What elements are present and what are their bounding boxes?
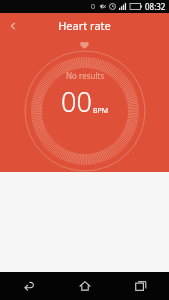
button[interactable]: Back [0, 13, 26, 38]
button[interactable]: Back [0, 272, 57, 300]
staticText: No results [66, 70, 105, 81]
staticText: 00 [61, 83, 92, 120]
staticText: 08:32 [145, 1, 166, 12]
button[interactable]: Recent apps [113, 272, 169, 300]
button[interactable]: Home [57, 272, 113, 300]
staticText: 0 [91, 2, 96, 12]
staticText: BPM [93, 106, 109, 116]
staticText: Heart rate [58, 18, 111, 33]
